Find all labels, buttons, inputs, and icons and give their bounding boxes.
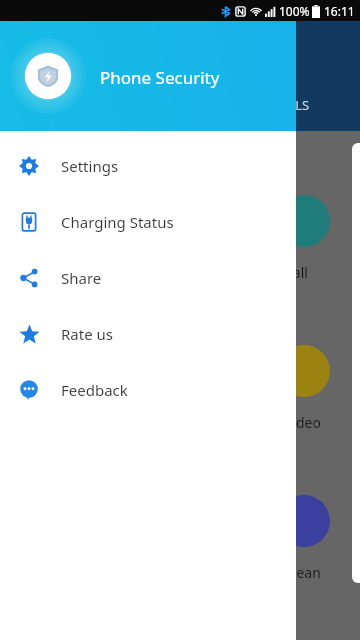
- button[interactable]: Settings: [0, 138, 296, 194]
- staticText: Clean: [284, 563, 321, 582]
- staticText: Share: [61, 268, 102, 288]
- staticText: Charging Status: [61, 212, 174, 232]
- button[interactable]: Charging Status: [0, 194, 296, 250]
- staticText: Phone Security: [100, 66, 220, 89]
- staticText: 100%: [279, 3, 310, 19]
- button[interactable]: Rate us: [0, 306, 296, 362]
- staticText: Settings: [61, 156, 119, 176]
- staticText: Video: [284, 413, 321, 432]
- staticText: Feedback: [61, 380, 128, 400]
- staticText: 16:11: [324, 3, 355, 19]
- button[interactable]: Feedback: [0, 362, 296, 418]
- button[interactable]: Clean: [278, 495, 330, 547]
- button[interactable]: Share: [0, 250, 296, 306]
- staticText: Call: [284, 263, 308, 282]
- staticText: Rate us: [61, 324, 113, 344]
- staticText: TOOLS: [268, 96, 310, 114]
- button[interactable]: Call: [278, 195, 330, 247]
- button[interactable]: Video: [278, 345, 330, 397]
